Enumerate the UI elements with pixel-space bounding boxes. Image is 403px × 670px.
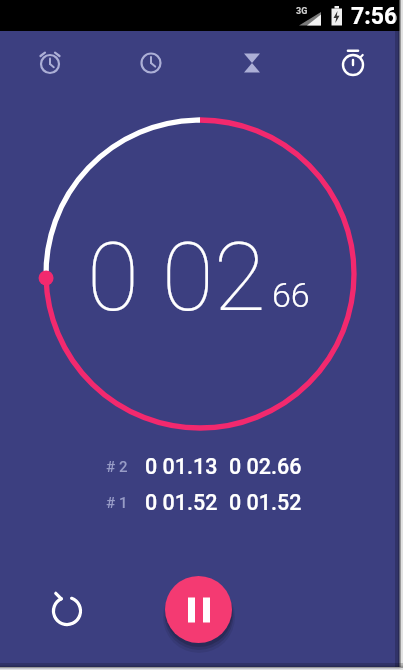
staticText: 7:56 [351, 3, 398, 30]
staticText: # 2 [106, 458, 128, 476]
staticText: 0 01.13 [145, 454, 218, 479]
staticText: 0 02 [87, 222, 266, 333]
staticText: 66 [272, 275, 310, 315]
button[interactable] [201, 31, 302, 95]
staticText: 0 01.52 [229, 490, 302, 515]
button[interactable] [0, 31, 100, 95]
staticText: 0 01.52 [145, 490, 218, 515]
staticText: 3G [296, 6, 308, 17]
button[interactable] [302, 31, 403, 95]
staticText: 0 02.66 [229, 454, 302, 479]
button[interactable] [43, 587, 91, 635]
button[interactable] [100, 31, 201, 95]
button[interactable] [165, 576, 232, 643]
staticText: # 1 [106, 494, 128, 512]
